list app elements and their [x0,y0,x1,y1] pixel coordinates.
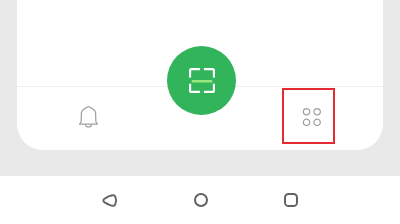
button[interactable]: Back [88,180,128,220]
button[interactable]: Home [181,180,221,220]
button[interactable]: Notifications [60,93,116,141]
button[interactable]: Recents [271,180,311,220]
button[interactable]: Apps [282,88,335,144]
button[interactable]: Scan [167,46,236,115]
